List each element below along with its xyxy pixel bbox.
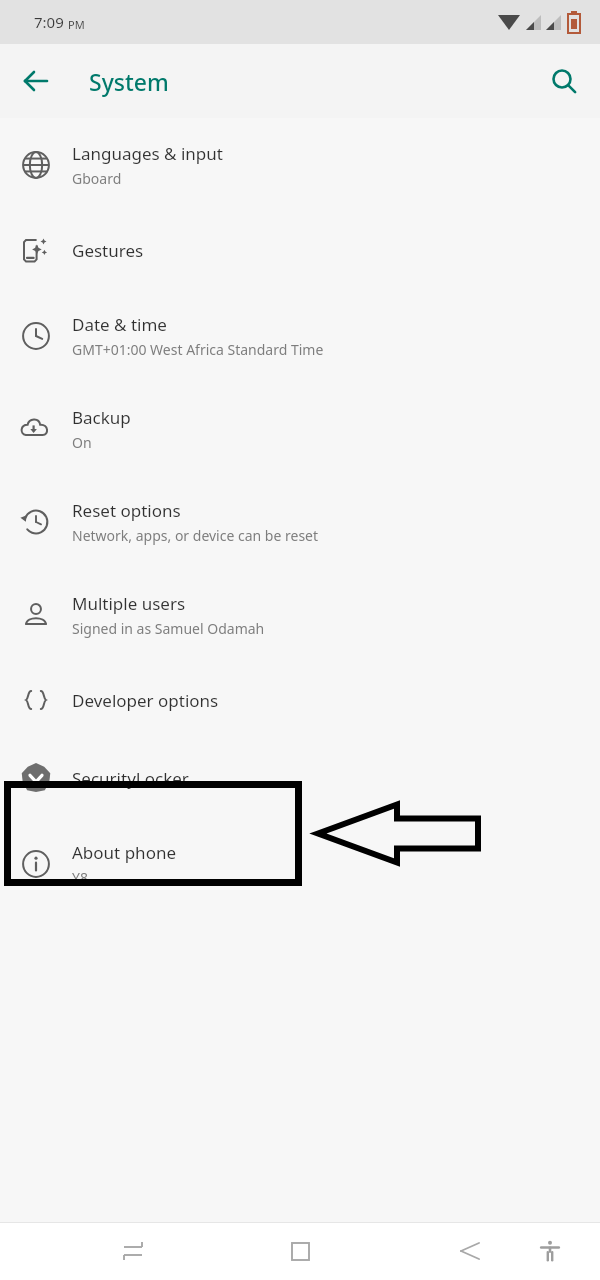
staticText: SecurityLocker <box>72 767 189 790</box>
button[interactable]: Backup <box>0 382 600 475</box>
button[interactable]: Languages & input <box>0 118 600 211</box>
button[interactable]: Search <box>540 57 588 105</box>
staticText: On <box>72 433 92 452</box>
staticText: Backup <box>72 406 131 429</box>
staticText: Date & time <box>72 313 167 336</box>
staticText: System <box>89 66 169 97</box>
button[interactable]: About phone <box>0 817 600 910</box>
button[interactable]: Accessibility <box>526 1227 574 1275</box>
staticText: Languages & input <box>72 142 223 165</box>
staticText: Gestures <box>72 239 144 262</box>
staticText: 7:09 <box>34 12 64 32</box>
staticText: Signed in as Samuel Odamah <box>72 619 265 638</box>
staticText: Gboard <box>72 169 122 188</box>
button[interactable]: Developer options <box>0 661 600 739</box>
button[interactable]: Date & time <box>0 289 600 382</box>
button[interactable]: Switch input method <box>109 1227 157 1275</box>
button[interactable]: SecurityLocker <box>0 739 600 817</box>
staticText: Reset options <box>72 499 181 522</box>
staticText: Developer options <box>72 689 219 712</box>
staticText: Multiple users <box>72 592 186 615</box>
button[interactable]: Back <box>446 1227 494 1275</box>
button[interactable]: Home <box>276 1227 324 1275</box>
button[interactable]: Reset options <box>0 475 600 568</box>
staticText: PM <box>68 17 85 32</box>
button[interactable]: Back <box>12 57 60 105</box>
staticText: About phone <box>72 841 177 864</box>
staticText: Network, apps, or device can be reset <box>72 526 319 545</box>
button[interactable]: Gestures <box>0 211 600 289</box>
staticText: GMT+01:00 West Africa Standard Time <box>72 340 324 359</box>
button[interactable]: Multiple users <box>0 568 600 661</box>
staticText: Y8 <box>72 868 88 887</box>
